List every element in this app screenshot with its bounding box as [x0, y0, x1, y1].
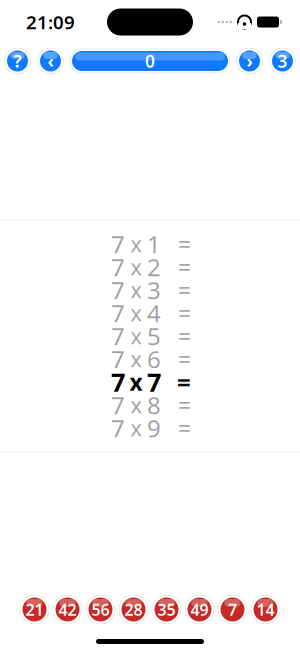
staticText: 7 [228, 599, 237, 620]
staticText: 3 [277, 49, 287, 72]
staticText: = [178, 298, 191, 328]
staticText: 49 [190, 599, 208, 620]
staticText: 7 [111, 320, 125, 352]
staticText: = [178, 413, 191, 443]
staticText: x [129, 367, 142, 397]
staticText: 0 [145, 49, 155, 72]
staticText: = [177, 366, 191, 398]
button[interactable]: Help [4, 47, 31, 74]
staticText: 9 [147, 412, 161, 444]
staticText: 7 [111, 274, 125, 306]
staticText: 7 [111, 251, 125, 283]
staticText: x [130, 253, 141, 281]
staticText: 42 [58, 599, 76, 620]
staticText: › [246, 49, 252, 72]
staticText: 7 [111, 412, 125, 444]
button[interactable]: Answer 49 [184, 594, 215, 625]
staticText: 5 [147, 320, 161, 352]
staticText: 7 [111, 365, 125, 399]
staticText: 28 [124, 599, 142, 620]
button[interactable]: Table 3 [269, 47, 296, 74]
staticText: 7 [147, 365, 161, 399]
staticText: 7 [111, 389, 125, 421]
staticText: 7 [111, 228, 125, 260]
staticText: x [130, 230, 141, 258]
staticText: = [178, 344, 191, 374]
button[interactable]: Answer 14 [250, 594, 281, 625]
button[interactable]: Next [236, 47, 263, 74]
staticText: x [130, 414, 141, 442]
staticText: 21:09 [26, 10, 75, 34]
staticText: = [178, 252, 191, 282]
button[interactable]: Answer 28 [118, 594, 149, 625]
staticText: = [178, 229, 191, 259]
staticText: x [130, 391, 141, 419]
staticText: 56 [91, 599, 109, 620]
button[interactable]: Answer 35 [151, 594, 182, 625]
staticText: 7 [111, 343, 125, 375]
staticText: = [178, 390, 191, 420]
staticText: = [178, 321, 191, 351]
button[interactable]: Previous [37, 47, 64, 74]
button[interactable]: Answer 21 [19, 594, 50, 625]
staticText: 2 [147, 251, 161, 283]
staticText: x [130, 345, 141, 373]
button[interactable]: Answer 42 [52, 594, 83, 625]
button[interactable]: Answer 7 [217, 594, 248, 625]
staticText: 7 [111, 297, 125, 329]
staticText: 14 [256, 599, 274, 620]
staticText: ? [13, 49, 21, 72]
staticText: 3 [147, 274, 161, 306]
staticText: ‹ [47, 49, 53, 72]
staticText: 21 [25, 599, 43, 620]
button[interactable]: 0 [70, 48, 230, 74]
staticText: 8 [147, 389, 161, 421]
staticText: 4 [147, 297, 161, 329]
staticText: x [130, 276, 141, 304]
staticText: x [130, 322, 141, 350]
button[interactable]: Answer 56 [85, 594, 116, 625]
staticText: = [178, 275, 191, 305]
staticText: 1 [147, 228, 161, 260]
staticText: 6 [147, 343, 161, 375]
staticText: x [130, 299, 141, 327]
staticText: 35 [157, 599, 175, 620]
